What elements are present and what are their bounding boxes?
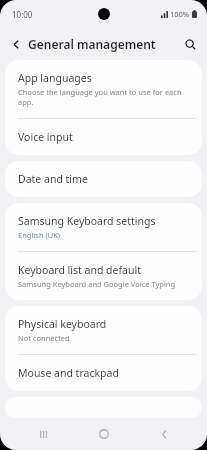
staticText: Not connected (18, 333, 70, 343)
staticText: General management (28, 36, 156, 52)
button[interactable]: Mouse and trackpad (5, 355, 202, 391)
staticText: Samsung Keyboard settings (18, 214, 156, 228)
button[interactable]: Back (6, 34, 26, 54)
button[interactable]: Search (180, 34, 200, 54)
staticText: Physical keyboard (18, 317, 107, 331)
staticText: 100% (170, 9, 190, 19)
button[interactable]: Samsung Keyboard settings (5, 203, 202, 252)
staticText: English (UK) (18, 230, 61, 240)
staticText: Keyboard list and default (18, 263, 141, 277)
button[interactable]: Date and time (5, 161, 202, 197)
staticText: Voice input (18, 130, 73, 144)
button[interactable]: App languages (5, 60, 202, 119)
button[interactable]: Home (87, 418, 121, 450)
staticText: 10:00 (12, 9, 33, 20)
button[interactable]: Back (147, 418, 181, 450)
staticText: Mouse and trackpad (18, 366, 119, 380)
staticText: Choose the language you want to use for … (18, 87, 189, 107)
button[interactable]: Physical keyboard (5, 306, 202, 355)
staticText: App languages (18, 71, 92, 85)
staticText: Samsung Keyboard and Google Voice Typing (18, 279, 176, 289)
button[interactable]: Keyboard list and default (5, 252, 202, 300)
staticText: Date and time (18, 172, 88, 186)
button[interactable]: Voice input (5, 119, 202, 155)
button[interactable]: Recent apps (26, 418, 60, 450)
